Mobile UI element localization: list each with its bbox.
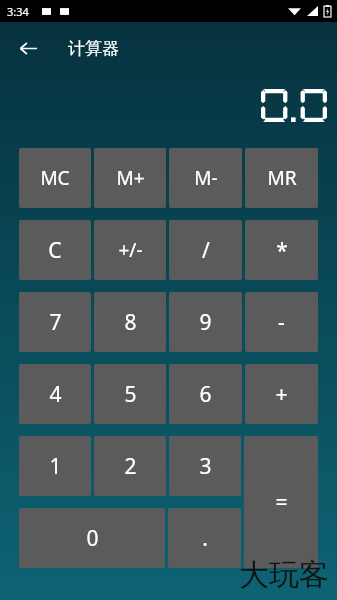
- button[interactable]: 8: [94, 292, 166, 352]
- button[interactable]: /: [169, 220, 242, 280]
- button[interactable]: =: [244, 436, 318, 568]
- staticText: 大玩客: [239, 556, 329, 594]
- staticText: C: [48, 236, 62, 265]
- button[interactable]: MC: [19, 148, 91, 208]
- staticText: 5: [124, 380, 137, 409]
- staticText: 2: [124, 452, 137, 481]
- button[interactable]: 9: [169, 292, 242, 352]
- staticText: 4: [49, 380, 62, 409]
- staticText: 3:34: [7, 4, 29, 19]
- button[interactable]: 5: [94, 364, 166, 424]
- button[interactable]: .: [168, 508, 241, 568]
- staticText: -: [278, 308, 285, 337]
- staticText: 3: [199, 452, 212, 481]
- staticText: M+: [116, 165, 145, 191]
- button[interactable]: +/-: [94, 220, 166, 280]
- staticText: 0: [86, 524, 99, 553]
- button[interactable]: 2: [94, 436, 166, 496]
- button[interactable]: 3: [169, 436, 241, 496]
- staticText: /: [202, 236, 210, 265]
- staticText: 7: [49, 308, 62, 337]
- button[interactable]: M-: [169, 148, 242, 208]
- button[interactable]: C: [19, 220, 91, 280]
- button[interactable]: 1: [19, 436, 91, 496]
- staticText: *: [276, 236, 288, 265]
- staticText: 9: [199, 308, 212, 337]
- staticText: +: [275, 380, 288, 409]
- button[interactable]: 7: [19, 292, 91, 352]
- button[interactable]: 4: [19, 364, 91, 424]
- staticText: M-: [194, 165, 218, 191]
- staticText: MC: [40, 165, 70, 191]
- staticText: 6: [199, 380, 212, 409]
- staticText: 8: [124, 308, 137, 337]
- staticText: 1: [49, 452, 62, 481]
- staticText: =: [275, 488, 288, 517]
- staticText: MR: [267, 165, 297, 191]
- button[interactable]: *: [245, 220, 318, 280]
- button[interactable]: -: [245, 292, 318, 352]
- button[interactable]: 6: [169, 364, 242, 424]
- button[interactable]: M+: [94, 148, 166, 208]
- button[interactable]: 0: [19, 508, 165, 568]
- button[interactable]: MR: [245, 148, 318, 208]
- staticText: 计算器: [68, 38, 119, 59]
- button[interactable]: +: [245, 364, 318, 424]
- staticText: .: [202, 524, 208, 553]
- button[interactable]: Back: [12, 32, 44, 64]
- staticText: +/-: [118, 237, 143, 263]
